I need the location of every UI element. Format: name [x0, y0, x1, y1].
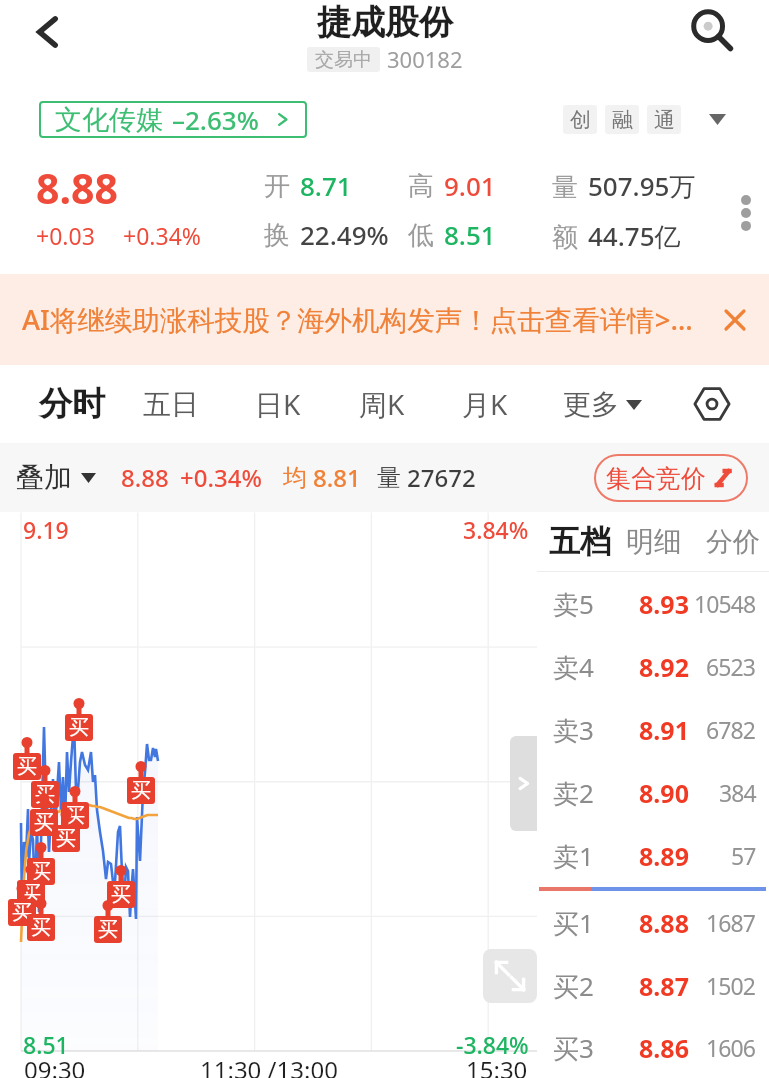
- staticText: 卖3: [553, 712, 594, 748]
- button[interactable]: 五档: [549, 522, 611, 561]
- staticText: 9.01: [444, 168, 496, 203]
- button[interactable]: Close: [708, 293, 762, 347]
- button[interactable]: 分时: [39, 383, 105, 425]
- staticText: 文化传媒: [55, 103, 163, 137]
- staticText: 买: [131, 778, 151, 803]
- staticText: 8.87: [639, 969, 689, 1003]
- button[interactable]: 卖2: [537, 761, 769, 824]
- staticText: 8.51: [444, 217, 496, 252]
- staticText: 8.81: [313, 461, 361, 494]
- staticText: 1687: [706, 907, 756, 938]
- staticText: +0.03: [36, 220, 95, 251]
- staticText: 买: [34, 810, 54, 835]
- staticText: 9.19: [23, 514, 69, 545]
- button[interactable]: 五日: [143, 387, 199, 422]
- staticText: 22.49%: [300, 217, 389, 252]
- staticText: 通: [654, 107, 675, 133]
- staticText: 8.93: [639, 587, 689, 621]
- staticText: –2.63%: [172, 102, 259, 137]
- button[interactable]: 创: [563, 105, 597, 134]
- staticText: 叠加: [16, 460, 72, 495]
- button[interactable]: More options: [723, 152, 769, 274]
- button[interactable]: 叠加: [16, 460, 96, 495]
- button[interactable]: 文化传媒: [55, 101, 290, 138]
- button[interactable]: Back: [20, 4, 76, 60]
- button[interactable]: 卖4: [537, 635, 769, 698]
- staticText: 买: [21, 881, 41, 906]
- staticText: 买2: [553, 968, 594, 1004]
- button[interactable]: Settings: [683, 375, 741, 433]
- staticText: 卖5: [553, 586, 594, 622]
- staticText: 买: [98, 917, 118, 942]
- button[interactable]: 明细: [626, 524, 682, 559]
- staticText: 卖4: [553, 649, 594, 685]
- staticText: 买3: [553, 1030, 594, 1066]
- button[interactable]: 融: [605, 105, 639, 134]
- staticText: 买: [17, 754, 37, 779]
- staticText: 买: [35, 782, 55, 807]
- staticText: 384: [719, 777, 756, 808]
- button[interactable]: 买2: [537, 954, 769, 1017]
- staticText: 集合竞价: [606, 463, 706, 494]
- button[interactable]: Fullscreen: [483, 949, 537, 1003]
- staticText: 8.89: [639, 839, 689, 873]
- staticText: 创: [570, 107, 591, 133]
- staticText: 8.88: [36, 160, 118, 216]
- button[interactable]: More: [701, 103, 733, 135]
- staticText: AI将继续助涨科技股？海外机构发声！点击查看详情>…: [22, 301, 708, 339]
- button[interactable]: 买3: [537, 1017, 769, 1078]
- staticText: 均: [283, 463, 307, 493]
- staticText: 8.86: [639, 1031, 689, 1065]
- staticText: 换: [264, 219, 290, 252]
- button[interactable]: 卖1: [537, 824, 769, 887]
- button[interactable]: 周K: [359, 385, 405, 423]
- staticText: +0.34%: [180, 461, 262, 494]
- staticText: 6523: [706, 651, 756, 682]
- staticText: 捷成股份: [317, 1, 453, 44]
- staticText: 量: [552, 171, 578, 204]
- staticText: 1502: [706, 970, 756, 1001]
- staticText: 11:30 /13:00: [200, 1053, 338, 1078]
- staticText: 买: [31, 859, 51, 884]
- button[interactable]: 分价: [706, 525, 760, 559]
- button[interactable]: 通: [647, 105, 681, 134]
- staticText: 8.88: [121, 461, 169, 494]
- button[interactable]: Search: [683, 2, 739, 58]
- staticText: 8.92: [639, 650, 689, 684]
- button[interactable]: Expand panel: [510, 736, 537, 831]
- staticText: 买: [111, 882, 131, 907]
- button[interactable]: 买1: [537, 891, 769, 954]
- button[interactable]: 集合竞价: [606, 454, 733, 502]
- staticText: 44.75亿: [588, 218, 681, 254]
- button[interactable]: 卖3: [537, 698, 769, 761]
- staticText: 低: [408, 219, 434, 252]
- staticText: 高: [408, 170, 434, 203]
- staticText: 买: [56, 826, 76, 851]
- staticText: 507.95万: [588, 168, 696, 204]
- staticText: 交易中: [315, 48, 372, 72]
- staticText: 更多: [563, 387, 619, 422]
- staticText: 买: [12, 900, 32, 925]
- staticText: -3.84%: [456, 1029, 529, 1060]
- staticText: 300182: [387, 44, 463, 74]
- staticText: +0.34%: [123, 220, 201, 251]
- button[interactable]: 更多: [563, 387, 642, 422]
- staticText: 09:30: [24, 1053, 86, 1078]
- staticText: 额: [552, 221, 578, 254]
- staticText: 8.91: [639, 713, 689, 747]
- button[interactable]: 日K: [255, 385, 301, 423]
- staticText: 27672: [407, 461, 476, 494]
- staticText: 卖2: [553, 775, 594, 811]
- staticText: 15:30: [466, 1053, 528, 1078]
- staticText: 量: [377, 463, 401, 493]
- button[interactable]: 卖5: [537, 572, 769, 635]
- staticText: 8.90: [639, 776, 689, 810]
- button[interactable]: AI将继续助涨科技股？海外机构发声！点击查看详情>…: [0, 274, 769, 365]
- staticText: 8.51: [23, 1029, 69, 1060]
- staticText: 3.84%: [463, 514, 529, 545]
- staticText: 10548: [694, 588, 756, 619]
- staticText: 6782: [706, 714, 756, 745]
- staticText: 8.88: [639, 906, 689, 940]
- button[interactable]: 月K: [462, 385, 508, 423]
- staticText: 卖1: [553, 838, 594, 874]
